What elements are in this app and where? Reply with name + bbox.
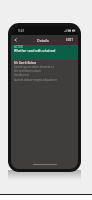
staticText: Mr Gerrit Balazs xyxy=(14,61,37,65)
staticText: Details xyxy=(37,38,49,43)
button[interactable]: Back xyxy=(11,35,21,45)
staticText: Lorem ipsum dolor sit amet co xyxy=(14,65,55,69)
staticText: elit sed diam nonum xyxy=(14,69,41,73)
staticText: 9:41 xyxy=(18,29,25,33)
staticText: laoreet dolore magna aliquam er xyxy=(14,78,58,82)
staticText: EDIT xyxy=(66,38,74,42)
button[interactable]: EDIT xyxy=(66,38,74,42)
staticText: tincidunt ut xyxy=(14,73,30,77)
staticText: ACTIVE xyxy=(14,45,24,49)
staticText: Whether used with what wel xyxy=(14,49,56,53)
